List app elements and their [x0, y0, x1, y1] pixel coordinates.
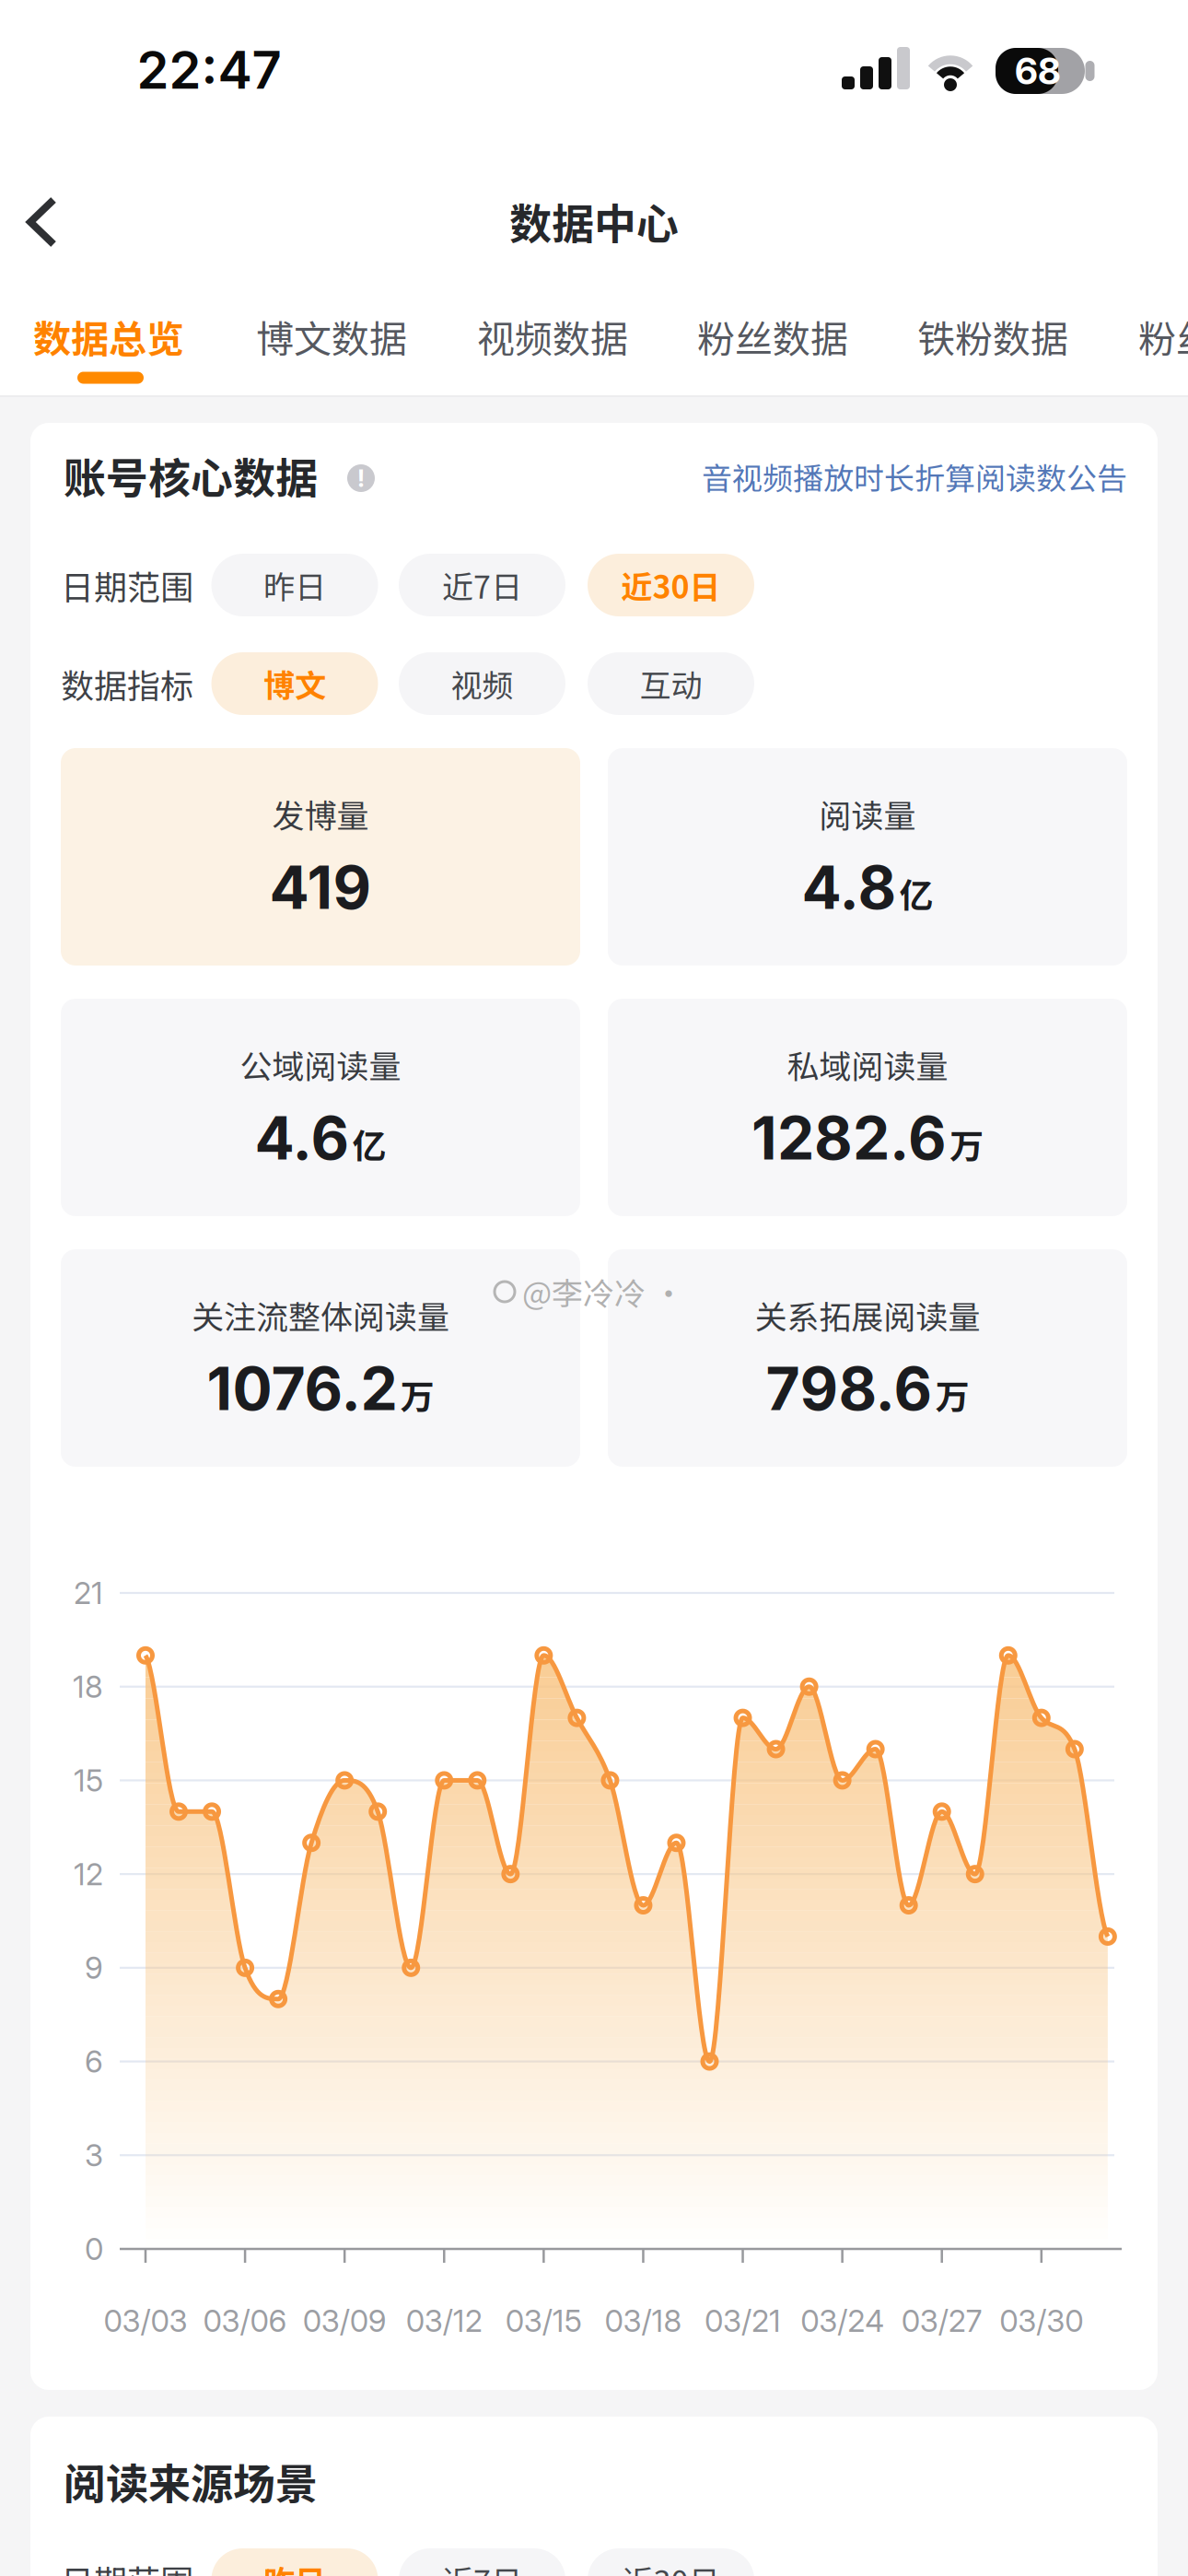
- staticText: 视频: [451, 661, 513, 706]
- staticText: 铁粉数据: [917, 309, 1068, 364]
- staticText: 昨日: [263, 562, 326, 608]
- staticText: 03/03: [104, 2302, 187, 2339]
- button[interactable]: 视频数据: [447, 299, 658, 373]
- button[interactable]: !: [347, 464, 375, 493]
- button[interactable]: 公域阅读量: [61, 999, 580, 1216]
- staticText: 21: [74, 1575, 103, 1611]
- button[interactable]: 数据总览: [3, 299, 215, 373]
- button[interactable]: 博文: [211, 652, 378, 715]
- staticText: 粉丝数据: [697, 309, 848, 364]
- staticText: 03/21: [705, 2302, 781, 2339]
- staticText: 0: [85, 2231, 103, 2267]
- button[interactable]: 关系拓展阅读量: [608, 1249, 1127, 1467]
- staticText: 视频数据: [477, 309, 628, 364]
- button[interactable]: 铁粉数据: [887, 299, 1099, 373]
- staticText: 6: [85, 2043, 103, 2080]
- staticText: 22:47: [137, 39, 281, 101]
- staticText: 419: [269, 852, 372, 923]
- staticText: 68: [1015, 49, 1061, 93]
- staticText: 账号核心数据: [64, 445, 318, 506]
- staticText: 博文: [263, 661, 326, 706]
- staticText: 万: [949, 1119, 984, 1168]
- button[interactable]: 音视频播放时长折算阅读数公告: [556, 454, 1127, 498]
- staticText: 公域阅读量: [240, 1041, 401, 1088]
- staticText: 1282.6: [751, 1102, 947, 1174]
- staticText: 3: [85, 2137, 103, 2174]
- staticText: 近30日: [621, 562, 721, 608]
- staticText: 03/24: [800, 2302, 884, 2339]
- staticText: 关系拓展阅读量: [755, 1292, 980, 1338]
- staticText: 私域阅读量: [787, 1041, 948, 1088]
- staticText: 阅读来源场景: [64, 2450, 318, 2512]
- staticText: 发博量: [272, 790, 369, 837]
- staticText: 音视频播放时长折算阅读数公告: [702, 454, 1127, 498]
- staticText: 03/09: [303, 2302, 387, 2339]
- staticText: 798.6: [766, 1353, 932, 1424]
- button[interactable]: [0, 181, 83, 263]
- staticText: 万: [935, 1370, 969, 1419]
- button[interactable]: 发博量: [61, 748, 580, 966]
- staticText: 亿: [899, 868, 933, 918]
- staticText: 03/27: [901, 2302, 982, 2339]
- staticText: 亿: [352, 1119, 386, 1168]
- button[interactable]: 粉丝服务: [1108, 299, 1188, 373]
- staticText: 近7日: [442, 2557, 522, 2576]
- staticText: 近30日: [622, 2557, 720, 2576]
- staticText: 4.8: [802, 852, 897, 923]
- staticText: 数据指标: [61, 660, 193, 708]
- staticText: 03/12: [406, 2302, 482, 2339]
- staticText: !: [357, 464, 365, 493]
- staticText: 阅读量: [819, 790, 916, 837]
- button[interactable]: 视频: [399, 652, 565, 715]
- staticText: 日期范围: [61, 2556, 193, 2576]
- staticText: 数据中心: [509, 190, 679, 252]
- button[interactable]: 私域阅读量: [608, 999, 1127, 1216]
- staticText: @李冷冷 ·: [522, 1269, 684, 1314]
- button[interactable]: 近7日: [399, 554, 565, 616]
- button[interactable]: 博文数据: [226, 299, 437, 373]
- staticText: 03/18: [605, 2302, 682, 2339]
- staticText: 互动: [640, 661, 702, 706]
- staticText: 粉丝服务: [1138, 309, 1188, 364]
- staticText: 9: [85, 1949, 103, 1986]
- staticText: 15: [74, 1762, 103, 1799]
- staticText: 日期范围: [61, 561, 193, 609]
- staticText: 03/15: [505, 2302, 582, 2339]
- button[interactable]: 互动: [588, 652, 754, 715]
- staticText: 昨日: [263, 2557, 326, 2576]
- staticText: 博文数据: [256, 309, 407, 364]
- button[interactable]: 关注流整体阅读量: [61, 1249, 580, 1467]
- button[interactable]: 近30日: [588, 2548, 754, 2576]
- button[interactable]: 昨日: [211, 2548, 378, 2576]
- button[interactable]: 阅读量: [608, 748, 1127, 966]
- staticText: 03/30: [999, 2302, 1083, 2339]
- staticText: 近7日: [442, 562, 522, 608]
- button[interactable]: 昨日: [211, 554, 378, 616]
- button[interactable]: 粉丝数据: [667, 299, 879, 373]
- staticText: 12: [74, 1856, 103, 1892]
- staticText: 03/06: [203, 2302, 287, 2339]
- staticText: 18: [73, 1668, 103, 1705]
- staticText: 1076.2: [207, 1353, 397, 1424]
- staticText: 数据总览: [33, 309, 184, 364]
- staticText: 关注流整体阅读量: [192, 1292, 449, 1338]
- button[interactable]: 近30日: [588, 554, 754, 616]
- staticText: 万: [400, 1370, 434, 1419]
- button[interactable]: 近7日: [399, 2548, 565, 2576]
- staticText: 4.6: [255, 1102, 349, 1174]
